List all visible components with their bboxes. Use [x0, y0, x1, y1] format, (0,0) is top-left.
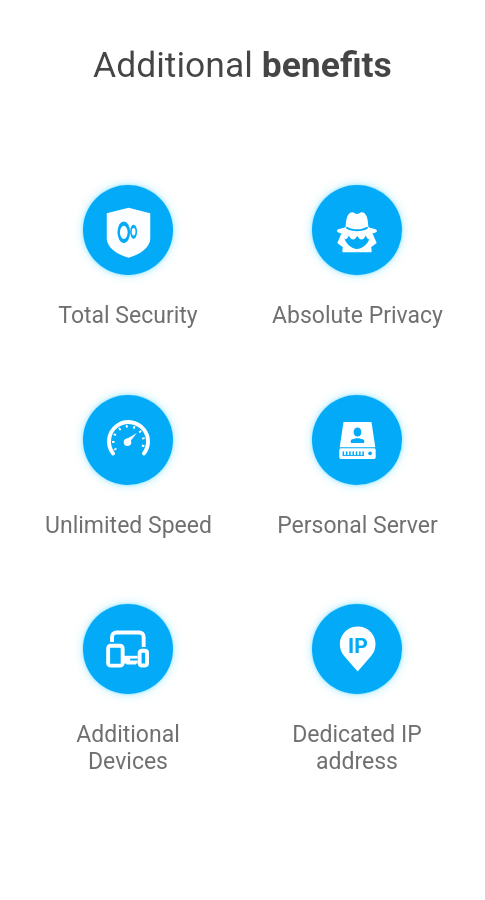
- staticText: Total Security: [58, 302, 198, 329]
- other: Absolute Privacy: [294, 167, 420, 293]
- staticText: Unlimited Speed: [45, 512, 212, 539]
- other: Total Security: [65, 167, 191, 293]
- staticText: IP: [348, 634, 368, 659]
- other: Additional Devices: [65, 586, 191, 712]
- button[interactable]: Personal Server: [252, 377, 462, 503]
- staticText: Personal Server: [277, 512, 438, 539]
- other: Personal Server: [294, 377, 420, 503]
- other: Unlimited Speed: [65, 377, 191, 503]
- staticText: Absolute Privacy: [272, 302, 443, 329]
- button[interactable]: Dedicated IP address: [252, 586, 462, 712]
- staticText: Additional Devices: [76, 721, 180, 775]
- button[interactable]: Unlimited Speed: [23, 377, 233, 503]
- staticText: Dedicated IP address: [292, 721, 422, 775]
- button[interactable]: Total Security: [23, 167, 233, 293]
- other: Dedicated IP address: [294, 586, 420, 712]
- button[interactable]: Absolute Privacy: [252, 167, 462, 293]
- staticText: Additional benefits: [93, 44, 392, 86]
- button[interactable]: Additional Devices: [23, 586, 233, 712]
